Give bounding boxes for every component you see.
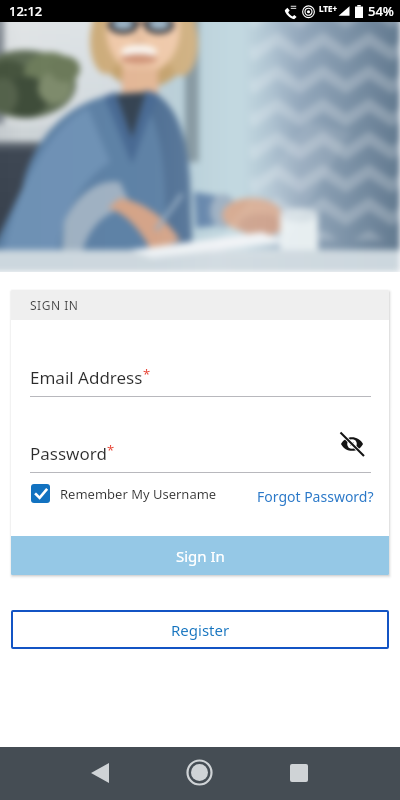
staticText: Password: [30, 442, 107, 465]
button[interactable]: Back: [76, 749, 123, 796]
staticText: SIGN IN: [30, 297, 79, 313]
staticText: Remember My Username: [60, 485, 217, 503]
button[interactable]: Remember My Username: [31, 484, 217, 503]
staticText: Forgot Password?: [257, 487, 374, 506]
staticText: LTE+: [319, 3, 337, 14]
button[interactable]: Recent apps: [275, 749, 322, 796]
staticText: Register: [171, 620, 230, 640]
button[interactable]: Show password: [335, 427, 369, 461]
button[interactable]: Forgot Password?: [257, 485, 374, 506]
button[interactable]: Register: [11, 610, 389, 649]
staticText: *: [107, 441, 115, 459]
staticText: Email Address: [30, 366, 143, 389]
staticText: Sign In: [176, 546, 225, 566]
button[interactable]: Home: [176, 749, 223, 796]
staticText: 12:12: [9, 2, 43, 20]
staticText: 54%: [368, 2, 394, 20]
button[interactable]: Sign In: [11, 536, 389, 575]
staticText: *: [143, 365, 151, 383]
